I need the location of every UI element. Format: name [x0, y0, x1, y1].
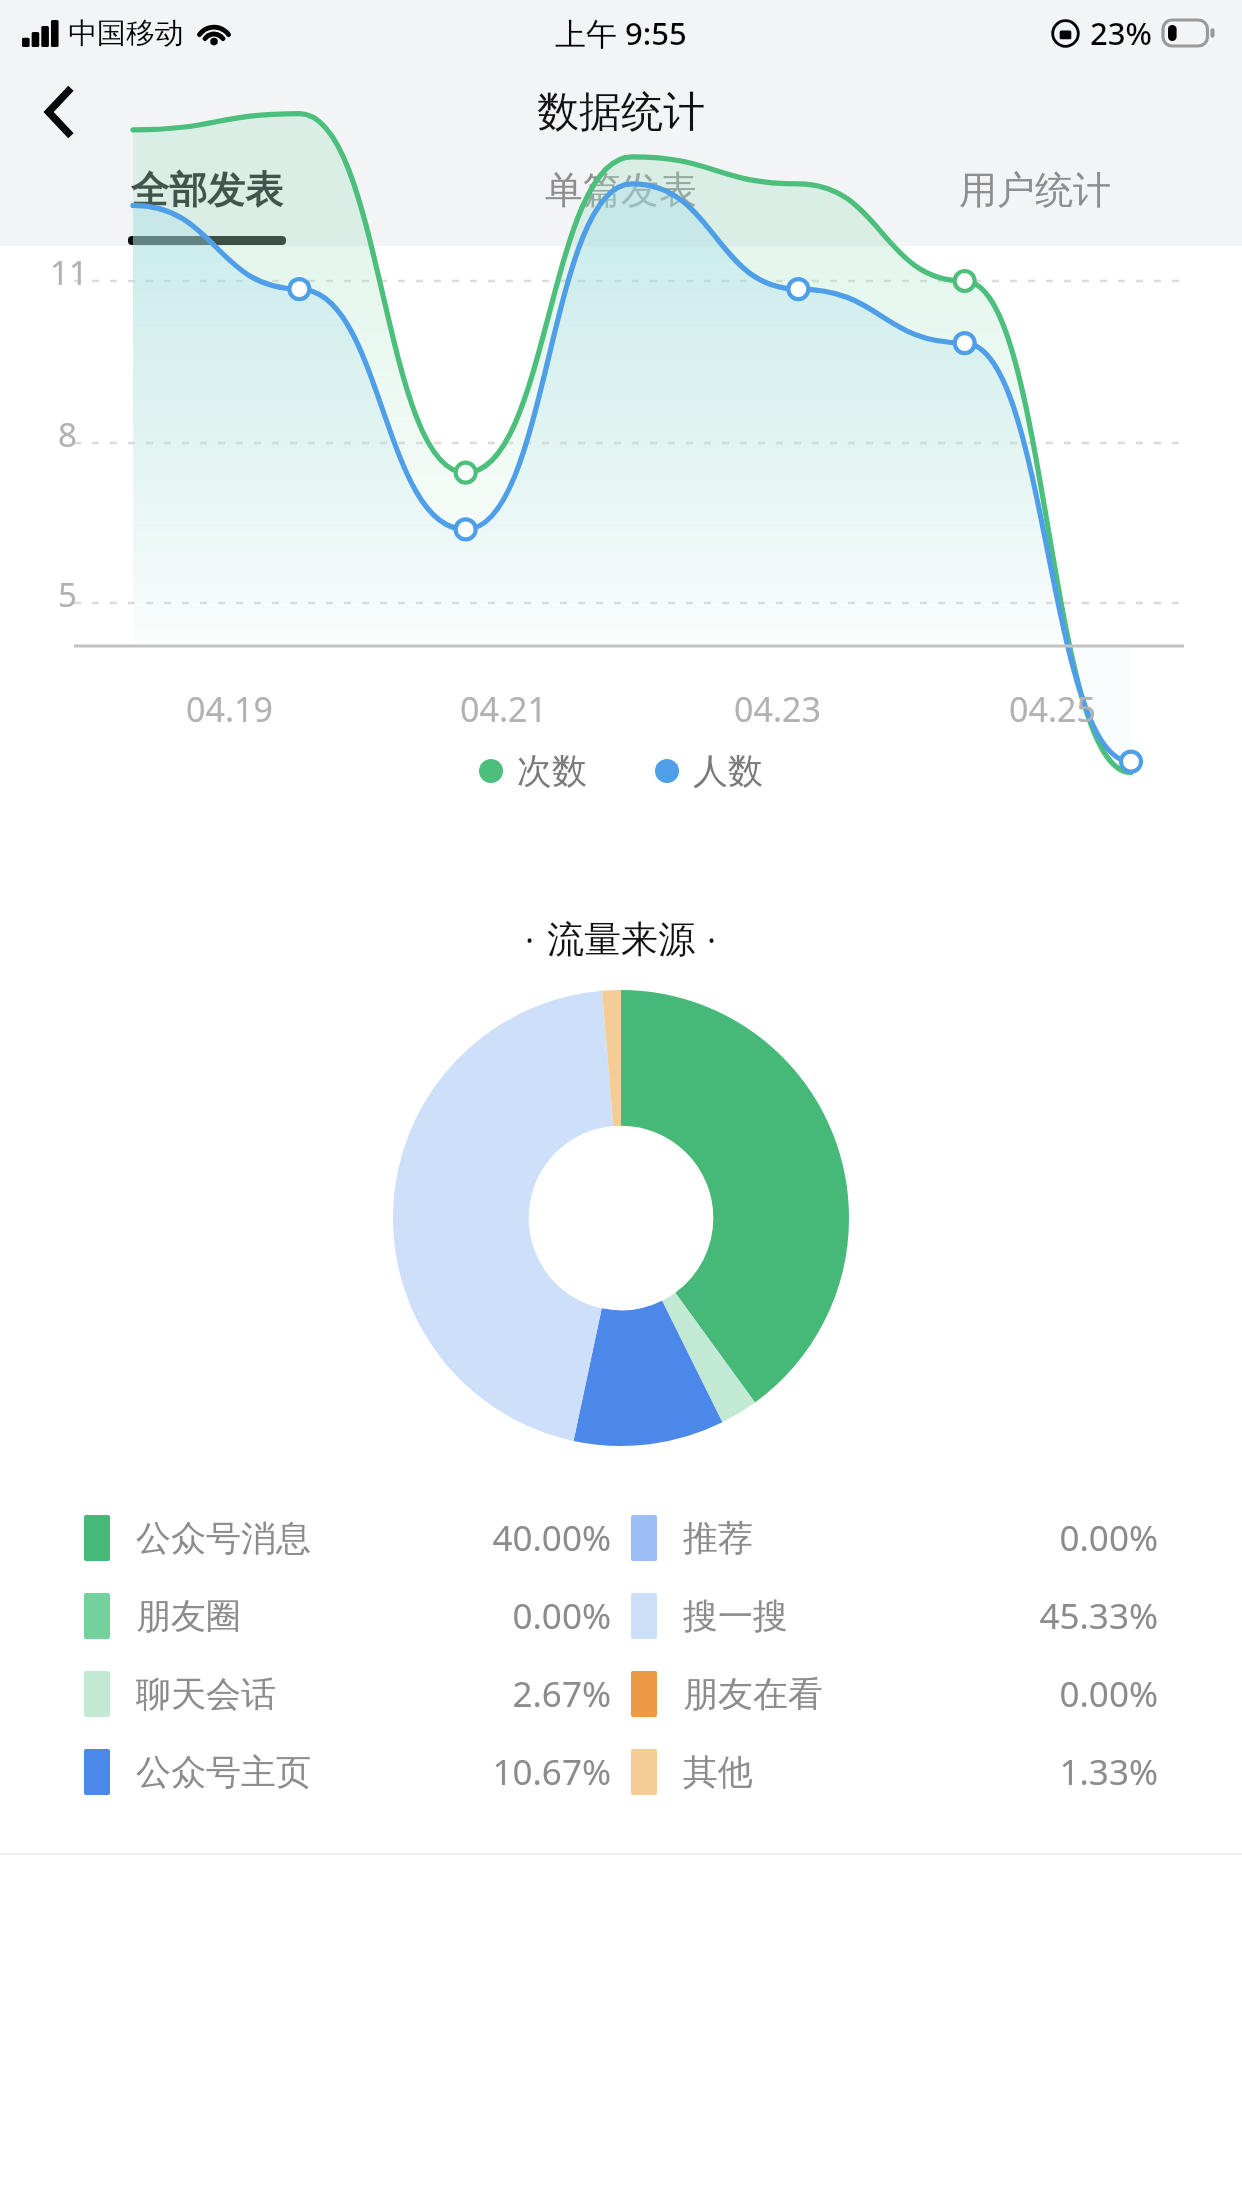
- staticText: 单篇发表: [545, 166, 697, 214]
- staticText: 11: [50, 250, 88, 295]
- staticText: ·: [525, 917, 535, 963]
- button[interactable]: 人数: [647, 749, 771, 793]
- staticText: 数据统计: [537, 86, 705, 139]
- staticText: ·: [707, 917, 717, 963]
- staticText: 1.33%: [873, 1748, 1158, 1796]
- staticText: 其他: [683, 1750, 873, 1794]
- staticText: 推荐: [683, 1516, 873, 1560]
- button[interactable]: 公众号消息: [84, 1508, 611, 1568]
- staticText: 聊天会话: [136, 1672, 326, 1716]
- staticText: 0.00%: [873, 1514, 1158, 1562]
- staticText: 0.00%: [326, 1592, 611, 1640]
- staticText: 04.19: [186, 686, 273, 732]
- button[interactable]: 推荐: [631, 1508, 1158, 1568]
- staticText: 次数: [517, 749, 587, 793]
- staticText: 40.00%: [326, 1514, 611, 1562]
- staticText: 公众号消息: [136, 1516, 326, 1560]
- staticText: 5: [58, 572, 77, 617]
- staticText: 04.21: [460, 686, 547, 732]
- staticText: 人数: [693, 749, 763, 793]
- button[interactable]: 全部发表: [0, 158, 414, 246]
- staticText: 朋友圈: [136, 1594, 326, 1638]
- button[interactable]: 单篇发表: [414, 158, 828, 246]
- staticText: 公众号主页: [136, 1750, 326, 1794]
- staticText: 流量来源: [547, 916, 695, 963]
- button[interactable]: 朋友在看: [631, 1664, 1158, 1724]
- button[interactable]: 公众号主页: [84, 1742, 611, 1802]
- staticText: 0.00%: [873, 1670, 1158, 1718]
- button[interactable]: 朋友圈: [84, 1586, 611, 1646]
- staticText: 04.23: [734, 686, 821, 732]
- button[interactable]: Back: [20, 73, 98, 151]
- staticText: 搜一搜: [683, 1594, 873, 1638]
- staticText: 04.25: [1009, 686, 1096, 732]
- staticText: 用户统计: [959, 166, 1111, 214]
- button[interactable]: 其他: [631, 1742, 1158, 1802]
- button[interactable]: 搜一搜: [631, 1586, 1158, 1646]
- staticText: 10.67%: [326, 1748, 611, 1796]
- staticText: 上午 9:55: [555, 12, 687, 54]
- button[interactable]: 用户统计: [828, 158, 1242, 246]
- staticText: 中国移动: [68, 15, 184, 52]
- staticText: 8: [58, 412, 77, 457]
- staticText: 朋友在看: [683, 1672, 873, 1716]
- staticText: 45.33%: [873, 1592, 1158, 1640]
- button[interactable]: 聊天会话: [84, 1664, 611, 1724]
- staticText: 2.67%: [326, 1670, 611, 1718]
- staticText: 23%: [1090, 12, 1152, 54]
- staticText: 全部发表: [131, 166, 283, 214]
- button[interactable]: 次数: [471, 749, 595, 793]
